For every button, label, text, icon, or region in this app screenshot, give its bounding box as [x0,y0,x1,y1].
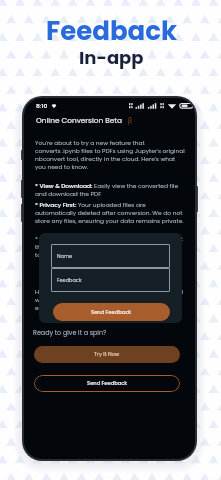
staticText: * View & Download: Easily view the conve… [35,182,186,198]
button[interactable]: Send Feedback [34,375,180,392]
staticText: Send Feedback [87,380,128,387]
button[interactable]: Name [57,244,170,268]
staticText: Send Feedback [91,309,132,316]
other: Notification [51,103,57,109]
staticText: You're about to try a new feature that c… [35,139,186,171]
staticText: Feedback [57,277,82,284]
staticText: Feedback [46,13,178,49]
staticText: * Privacy First: Your uploaded files are… [35,201,186,225]
staticText: In-app [79,45,144,70]
staticText: Have feedback? We'd love to hear what wo… [35,288,186,312]
staticText: Ready to give it a spin? [33,328,107,337]
staticText: Online Conversion Beta [36,115,123,125]
button[interactable]: Send Feedback [53,303,170,321]
staticText: Name [57,253,73,260]
button[interactable]: Feedback [57,268,170,292]
staticText: 8:10 [36,102,48,110]
staticText: * Fast & Simple: Just upload your notebo… [35,235,186,259]
staticText: β [128,116,132,125]
button[interactable]: Try It Now [34,346,180,363]
staticText: Try It Now [94,351,120,358]
